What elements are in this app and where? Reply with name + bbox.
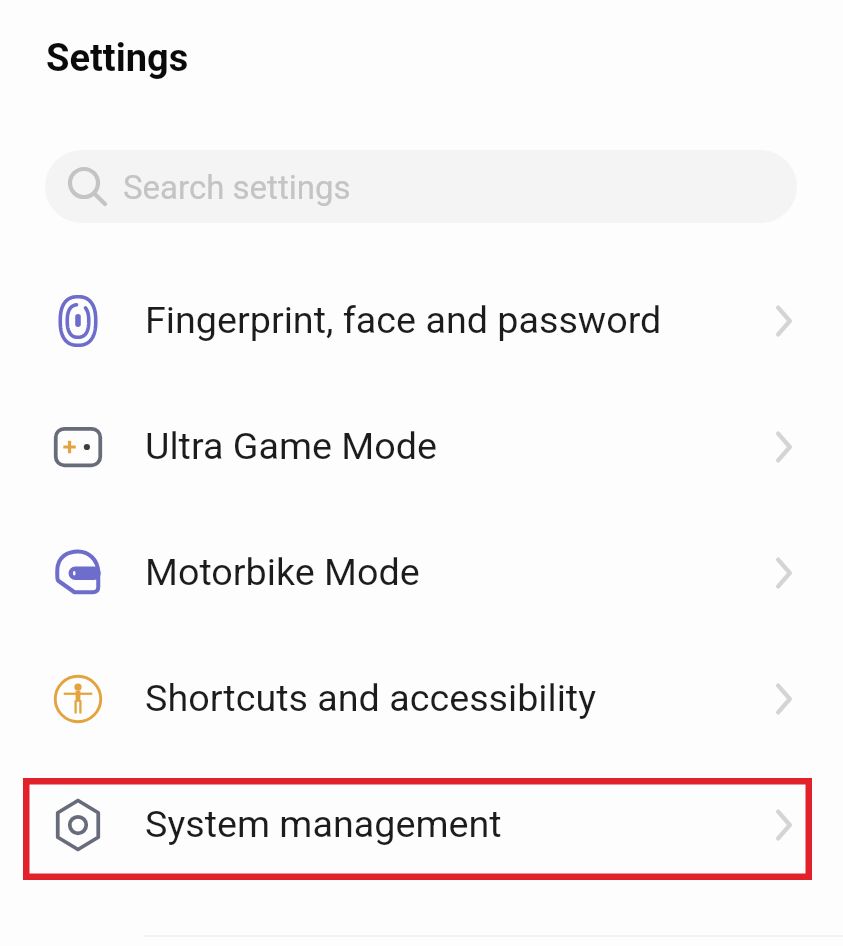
staticText: Motorbike Mode (145, 550, 420, 594)
button[interactable]: System management (0, 762, 843, 888)
button[interactable]: Motorbike Mode (0, 510, 843, 636)
other: Open Ultra Game Mode (774, 427, 814, 467)
other: Open Shortcuts and accessibility (774, 679, 814, 719)
staticText: Search settings (123, 168, 351, 207)
staticText: System management (145, 802, 502, 846)
staticText: Settings (46, 36, 189, 81)
button[interactable]: Fingerprint, face and password (0, 258, 843, 384)
staticText: Shortcuts and accessibility (145, 676, 597, 720)
other: Open Fingerprint, face and password (774, 301, 814, 341)
staticText: Ultra Game Mode (145, 424, 438, 468)
other: Search (70, 166, 112, 208)
staticText: Fingerprint, face and password (145, 298, 662, 342)
button[interactable]: Ultra Game Mode (0, 384, 843, 510)
button[interactable]: Search (45, 150, 797, 223)
other: Open System management (774, 805, 814, 845)
button[interactable]: Shortcuts and accessibility (0, 636, 843, 762)
other: Open Motorbike Mode (774, 553, 814, 593)
